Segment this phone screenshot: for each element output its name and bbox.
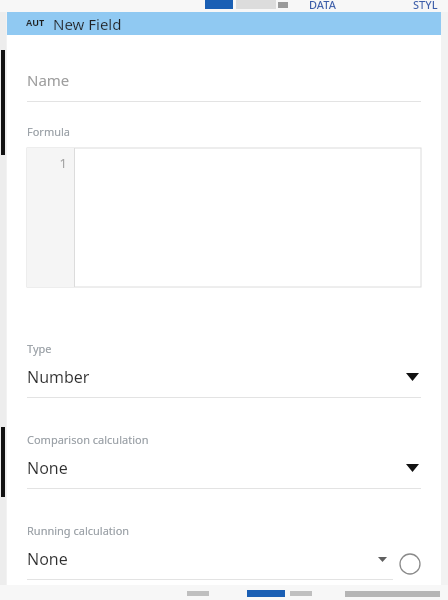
button[interactable]: Type — [27, 341, 421, 398]
other: Help — [399, 553, 421, 575]
staticText: Formula — [27, 124, 70, 139]
staticText: STYL — [413, 0, 438, 9]
staticText: AUT — [26, 16, 45, 28]
button[interactable]: 1 — [27, 148, 421, 287]
staticText: Number — [27, 366, 406, 388]
staticText: DATA — [309, 0, 336, 9]
staticText: None — [27, 548, 378, 570]
button[interactable]: Comparison calculation — [27, 432, 421, 489]
staticText: Running calculation — [27, 523, 130, 538]
button[interactable]: Running calculation — [27, 523, 421, 580]
staticText: 1 — [59, 154, 67, 172]
staticText: Comparison calculation — [27, 432, 149, 447]
staticText: None — [27, 457, 406, 479]
staticText: New Field — [53, 14, 122, 34]
button[interactable]: Name — [27, 70, 70, 90]
staticText: Type — [27, 341, 52, 356]
